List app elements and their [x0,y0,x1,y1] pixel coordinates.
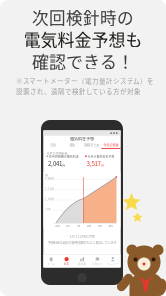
staticText: 7日 [77,224,81,228]
staticText: 2,100 [45,187,54,191]
staticText: メニュー [107,262,119,266]
staticText: ※スマートメーター（電力量計システム）を [16,76,154,85]
staticText: 円 [45,174,48,178]
staticText: 使用量 [77,262,86,266]
button[interactable]: 料金 [59,254,74,267]
staticText: 料金 [64,262,70,266]
button[interactable]: 使用量 [74,254,90,267]
staticText: 確認できる！ [32,49,134,73]
staticText: 今月の電気料金予想 [88,154,115,158]
button[interactable]: ホーム [43,254,59,267]
button[interactable]: メニュー [105,254,120,267]
staticText: 今月の料金 [103,143,118,147]
staticText: 円 [62,163,65,168]
staticText: 3,517 [86,159,100,168]
button[interactable]: お知らせ [90,254,105,267]
staticText: 円 [101,163,104,168]
staticText: お知らせ [92,262,103,266]
staticText: 2,041 [48,159,62,168]
staticText: 先月同時期の電気料金 [49,154,79,158]
staticText: 次回検針時の [32,5,134,29]
staticText: 設置され、遠隔で検針している方が対象 [16,86,141,96]
button[interactable]: App preview [43,142,63,149]
staticText: 期間まとめ [84,143,99,147]
staticText: 今月の予想料金 [46,151,67,156]
staticText: 2日 [66,224,70,228]
button[interactable]: App preview [63,142,82,149]
staticText: 700 [45,207,51,211]
staticText: 電気料金予想も [23,27,142,51]
staticText: ホーム [47,262,55,266]
staticText: 週別 [69,143,75,147]
staticText: 日別 [50,143,56,147]
button[interactable]: App preview [82,142,101,149]
staticText: 12日 [87,224,92,228]
staticText: 8/28 [55,224,59,228]
staticText: 1,400 [45,197,54,201]
button[interactable]: App preview [101,142,120,149]
staticText: 2,800 [45,177,54,181]
staticText: 22日 [108,224,113,228]
staticText: 予想料金は過去の使用実績をもとに算出しています [47,240,116,245]
staticText: 電気料金予想 [70,136,94,142]
staticText: 8月 31日頃の予想 [69,234,94,239]
staticText: 17日 [97,224,102,228]
